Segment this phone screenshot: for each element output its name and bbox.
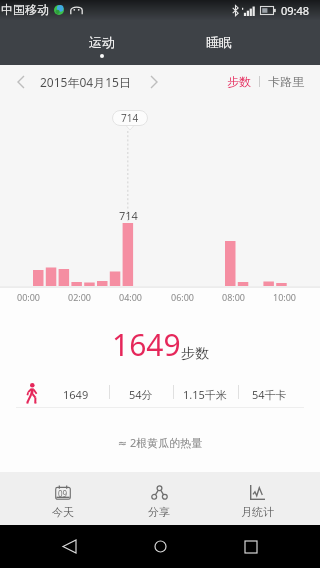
staticText: 09:48 — [281, 3, 310, 18]
staticText: 714 — [119, 208, 138, 223]
staticText: 步数 — [227, 74, 251, 89]
button[interactable]: Back — [47, 525, 91, 568]
staticText: 1649 — [63, 387, 89, 402]
staticText: 运动 — [89, 34, 115, 50]
button[interactable]: 月统计 — [217, 485, 297, 519]
staticText: 分享 — [148, 505, 170, 519]
staticText: 步数 — [181, 345, 209, 363]
staticText: 54千卡 — [252, 387, 287, 402]
button[interactable]: 运动 — [72, 20, 132, 58]
staticText: 中国移动 — [1, 2, 49, 17]
staticText: 08:00 — [222, 291, 246, 303]
button[interactable]: 分享 — [119, 485, 199, 519]
button[interactable]: 睡眠 — [189, 20, 249, 54]
staticText: 今天 — [52, 505, 74, 519]
staticText: 04:00 — [119, 291, 143, 303]
staticText: 00:00 — [17, 291, 41, 303]
button[interactable]: 今天 — [23, 485, 103, 519]
button[interactable]: Home — [138, 525, 182, 568]
other: 今天 — [55, 485, 71, 500]
staticText: 09 — [58, 488, 68, 499]
button[interactable]: Next day — [143, 71, 165, 93]
button[interactable]: Recents — [229, 525, 273, 568]
staticText: 2015年04月15日 — [40, 74, 131, 90]
staticText: 06:00 — [171, 291, 195, 303]
staticText: 卡路里 — [268, 74, 304, 89]
other: 分享 — [151, 485, 168, 500]
other: 月统计 — [250, 485, 265, 500]
staticText: 54分 — [129, 387, 153, 402]
button[interactable]: 步数 — [225, 74, 253, 89]
staticText: 月统计 — [241, 505, 274, 519]
staticText: 02:00 — [68, 291, 92, 303]
button[interactable]: 1649 — [0, 324, 320, 365]
staticText: 1649 — [112, 324, 181, 365]
staticText: 睡眠 — [206, 34, 232, 50]
staticText: 1.15千米 — [183, 387, 227, 402]
button[interactable]: 卡路里 — [266, 74, 306, 89]
staticText: 714 — [121, 111, 139, 125]
staticText: 10:00 — [273, 291, 297, 303]
button[interactable]: Previous day — [10, 71, 32, 93]
staticText: ≈ 2根黄瓜的热量 — [0, 435, 320, 450]
